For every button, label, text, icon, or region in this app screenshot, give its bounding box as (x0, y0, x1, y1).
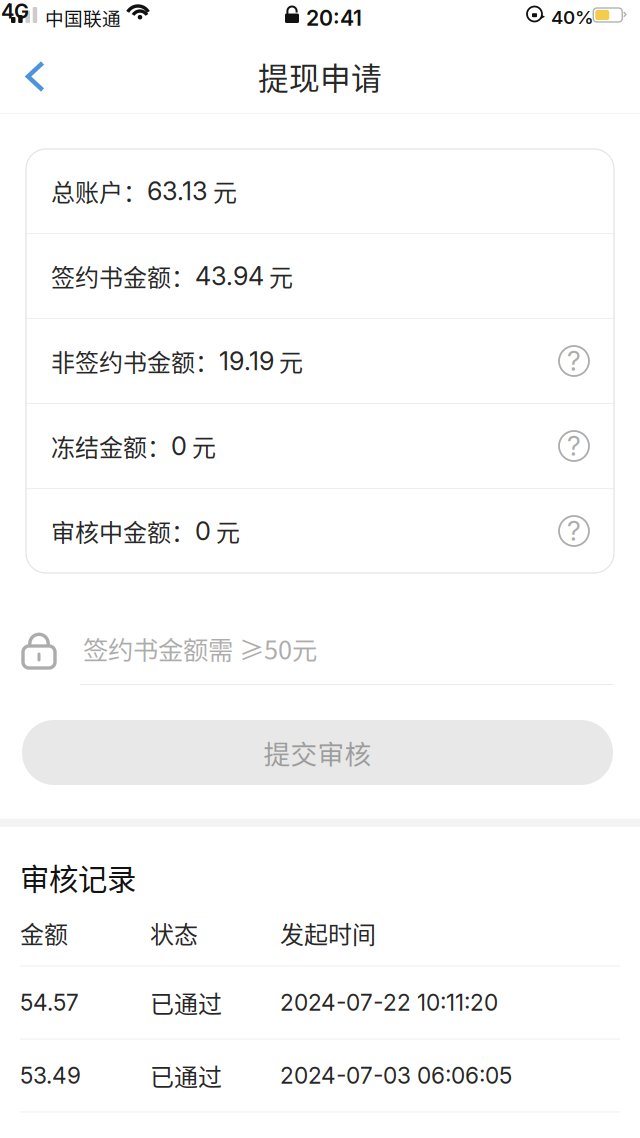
staticText: ? (567, 515, 581, 547)
staticText: 总账户： (51, 174, 147, 208)
staticText: 元 (274, 344, 303, 378)
staticText: 中国联通 (45, 4, 121, 31)
staticText: 2024-07-03 06:06:05 (280, 1062, 512, 1089)
staticText: 金额 (20, 916, 68, 950)
staticText: 元 (208, 174, 237, 208)
staticText: 19.19 (219, 346, 274, 376)
button[interactable]: 提交审核 (22, 720, 613, 785)
staticText: 元 (211, 514, 240, 548)
staticText: 元 (187, 429, 216, 463)
staticText: 已通过 (150, 1058, 222, 1093)
staticText: 54.57 (20, 989, 79, 1016)
staticText: 冻结金额： (51, 429, 171, 463)
staticText: 43.94 (195, 261, 264, 291)
staticText: 签约书金额需 ≥50元 (83, 630, 317, 667)
staticText: 53.49 (20, 1062, 81, 1089)
staticText: 提现申请 (258, 54, 382, 99)
staticText: ? (567, 430, 581, 462)
staticText: 63.13 (147, 176, 208, 206)
button[interactable]: 返回 (12, 51, 58, 101)
staticText: 审核中金额： (51, 514, 195, 548)
staticText: 发起时间 (280, 916, 376, 950)
staticText: 4G (1, 0, 29, 23)
staticText: 审核记录 (20, 856, 136, 898)
staticText: 状态 (150, 916, 198, 950)
staticText: 0 (195, 516, 211, 546)
staticText: 提交审核 (263, 733, 371, 772)
staticText: 元 (264, 259, 293, 293)
staticText: ? (567, 345, 581, 377)
staticText: 签约书金额： (51, 259, 195, 293)
staticText: 40% (551, 6, 594, 29)
staticText: 非签约书金额： (51, 344, 219, 378)
staticText: 20:41 (306, 5, 362, 31)
staticText: 0 (171, 431, 187, 461)
staticText: 2024-07-22 10:11:20 (280, 989, 498, 1016)
staticText: 已通过 (150, 985, 222, 1020)
